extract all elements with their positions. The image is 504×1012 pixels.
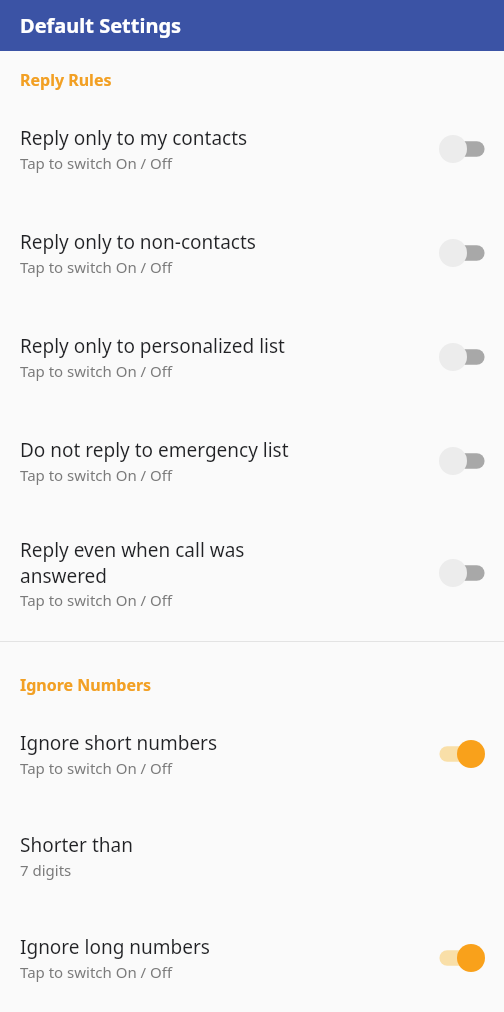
staticText: Tap to switch On / Off [20,590,173,610]
button[interactable]: Shorter than [0,820,504,892]
staticText: Tap to switch On / Off [20,758,173,778]
staticText: 7 digits [20,860,72,880]
staticText: Reply Rules [20,69,112,91]
staticText: Tap to switch On / Off [20,361,173,381]
staticText: Tap to switch On / Off [20,257,173,277]
staticText: Tap to switch On / Off [20,153,173,173]
staticText: Ignore long numbers [20,934,210,960]
button[interactable]: Ignore short numbers [0,718,504,790]
staticText: Shorter than [20,832,133,858]
button[interactable]: Ignore long numbers toggle [434,936,490,980]
button[interactable]: Reply only to my contacts [0,113,504,185]
staticText: Reply only to personalized list [20,333,285,359]
staticText: Ignore Numbers [20,674,152,696]
button[interactable]: Reply only to my contacts toggle [434,127,490,171]
button[interactable]: Reply only to non-contacts toggle [434,231,490,275]
staticText: Reply only to my contacts [20,125,248,151]
staticText: Ignore short numbers [20,730,218,756]
staticText: Tap to switch On / Off [20,465,173,485]
button[interactable]: Reply even when call was answered toggle [434,551,490,595]
button[interactable]: Ignore short numbers toggle [434,732,490,776]
button[interactable]: Reply only to non-contacts [0,217,504,289]
button[interactable]: Reply even when call was answered [0,525,504,621]
button[interactable]: Do not reply to emergency list toggle [434,439,490,483]
staticText: Reply even when call was answered [20,537,320,588]
staticText: Default Settings [20,12,182,39]
button[interactable]: Ignore long numbers [0,922,504,994]
staticText: Do not reply to emergency list [20,437,289,463]
button[interactable]: Reply only to personalized list toggle [434,335,490,379]
staticText: Tap to switch On / Off [20,962,173,982]
button[interactable]: Reply only to personalized list [0,321,504,393]
staticText: Reply only to non-contacts [20,229,256,255]
button[interactable]: Do not reply to emergency list [0,425,504,497]
